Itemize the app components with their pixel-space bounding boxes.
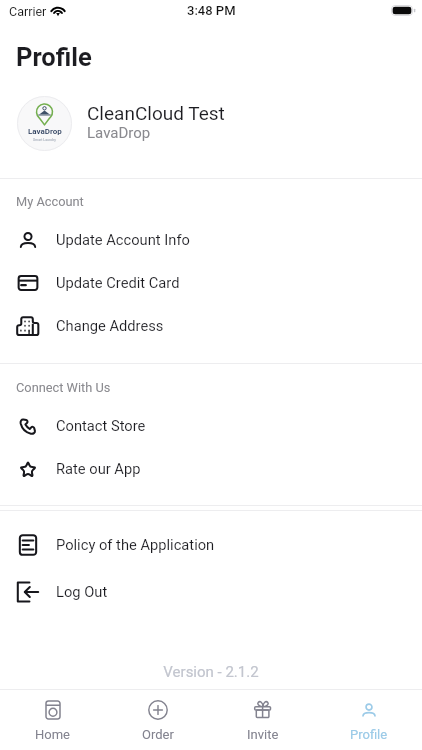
staticText: Carrier [9, 4, 47, 19]
button[interactable]: Order [105, 690, 210, 750]
button[interactable]: Update Account Info [0, 218, 422, 261]
staticText: Log Out [56, 583, 108, 600]
staticText: Update Account Info [56, 231, 190, 248]
staticText: 3:48 PM [187, 3, 236, 17]
button[interactable]: Change Address [0, 304, 422, 347]
button[interactable]: LavaDrop [0, 96, 422, 151]
staticText: Rate our App [56, 460, 141, 477]
staticText: Smart Laundry [33, 138, 56, 142]
staticText: Invite [247, 727, 279, 742]
button[interactable]: Home [0, 690, 105, 750]
staticText: Profile [16, 42, 92, 72]
staticText: My Account [16, 194, 84, 209]
button[interactable]: Profile [316, 690, 422, 750]
button[interactable]: Contact Store [0, 404, 422, 447]
button[interactable]: Policy of the Application [0, 523, 422, 566]
staticText: Update Credit Card [56, 274, 180, 291]
staticText: LavaDrop [87, 124, 151, 142]
button[interactable]: Log Out [0, 570, 422, 613]
button[interactable]: Update Credit Card [0, 261, 422, 304]
button[interactable]: Rate our App [0, 447, 422, 490]
staticText: LavaDrop [28, 127, 62, 136]
staticText: CleanCloud Test [87, 102, 225, 124]
staticText: Profile [350, 727, 388, 742]
staticText: Change Address [56, 317, 164, 334]
staticText: Connect With Us [16, 380, 111, 395]
staticText: Policy of the Application [56, 536, 215, 553]
staticText: Home [35, 727, 70, 742]
staticText: Contact Store [56, 417, 146, 434]
staticText: Version - 2.1.2 [163, 663, 259, 681]
staticText: Order [142, 727, 174, 742]
button[interactable]: Invite [210, 690, 316, 750]
